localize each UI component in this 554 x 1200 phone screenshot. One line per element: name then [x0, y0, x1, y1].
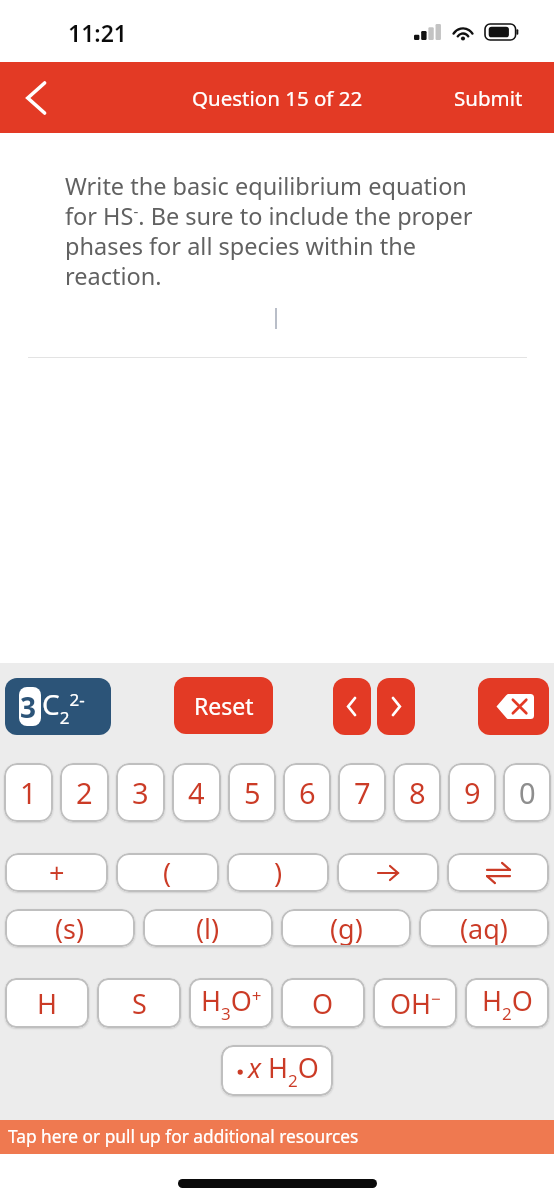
button[interactable]: 9 [448, 763, 496, 822]
button[interactable]: 3 [116, 763, 165, 822]
staticText: H [37, 985, 58, 1022]
staticText: 7 [354, 773, 371, 812]
button[interactable]: Submit [432, 70, 554, 126]
button[interactable]: 3 [5, 678, 111, 735]
button[interactable] [337, 853, 439, 892]
button[interactable]: 2 [60, 763, 109, 822]
staticText: (g) [330, 910, 363, 947]
staticText: H2O [482, 982, 533, 1025]
button[interactable]: Next [377, 678, 415, 735]
staticText: for HS-. Be sure to include the proper [65, 200, 473, 230]
button[interactable]: 7 [338, 763, 386, 822]
staticText: Tap here or pull up for additional resou… [8, 1125, 359, 1149]
staticText: C22- [42, 685, 85, 729]
staticText: (s) [55, 910, 85, 947]
button[interactable]: OH− [373, 978, 457, 1028]
button[interactable]: Back [8, 70, 64, 126]
staticText: (l) [196, 910, 220, 947]
button[interactable]: O [281, 978, 365, 1028]
staticText: ) [274, 854, 283, 891]
button[interactable]: (g) [281, 909, 411, 947]
staticText: Question 15 of 22 [192, 84, 363, 112]
button[interactable]: Delete [478, 678, 549, 735]
staticText: 1 [20, 773, 37, 812]
button[interactable]: Reset [174, 677, 273, 734]
button[interactable]: 5 [228, 763, 276, 822]
button[interactable]: ) [227, 853, 329, 892]
button[interactable]: H [5, 978, 89, 1028]
staticText: + [49, 854, 65, 891]
staticText: 3 [20, 688, 37, 726]
staticText: 3 [132, 773, 149, 812]
staticText: 0 [519, 773, 536, 812]
staticText: O [312, 985, 334, 1022]
staticText: reaction. [65, 260, 162, 290]
button[interactable]: 0 [503, 763, 551, 822]
staticText: 5 [244, 773, 261, 812]
staticText: 2 [76, 773, 93, 812]
staticText: ( [163, 854, 172, 891]
staticText: (aq) [460, 910, 508, 947]
button[interactable]: 4 [172, 763, 221, 822]
button[interactable]: Tap here or pull up for additional resou… [0, 1120, 554, 1154]
button[interactable]: (l) [143, 909, 273, 947]
staticText: 11:21 [68, 17, 127, 48]
button[interactable]: 8 [393, 763, 441, 822]
button[interactable]: Previous [333, 678, 371, 735]
staticText: 8 [409, 773, 426, 812]
staticText: Write the basic equilibrium equation [65, 170, 467, 200]
staticText: OH− [390, 985, 441, 1022]
button[interactable]: (aq) [419, 909, 549, 947]
button[interactable]: H3O+ [189, 978, 273, 1028]
button[interactable]: x H2O [221, 1045, 333, 1096]
staticText: Reset [194, 690, 254, 721]
staticText: Submit [454, 84, 523, 112]
button[interactable]: + [5, 853, 108, 892]
button[interactable]: (s) [5, 909, 135, 947]
staticText: 6 [299, 773, 316, 812]
staticText: H3O+ [201, 982, 262, 1025]
button[interactable]: 1 [4, 763, 53, 822]
staticText: S [132, 985, 147, 1022]
staticText: x H2O [248, 1049, 319, 1092]
staticText: phases for all species within the [65, 230, 416, 260]
staticText: 9 [464, 773, 481, 812]
button[interactable] [447, 853, 549, 892]
staticText: 4 [188, 773, 205, 812]
button[interactable]: 6 [283, 763, 331, 822]
button[interactable]: S [97, 978, 181, 1028]
button[interactable]: ( [116, 853, 219, 892]
button[interactable]: H2O [465, 978, 549, 1028]
